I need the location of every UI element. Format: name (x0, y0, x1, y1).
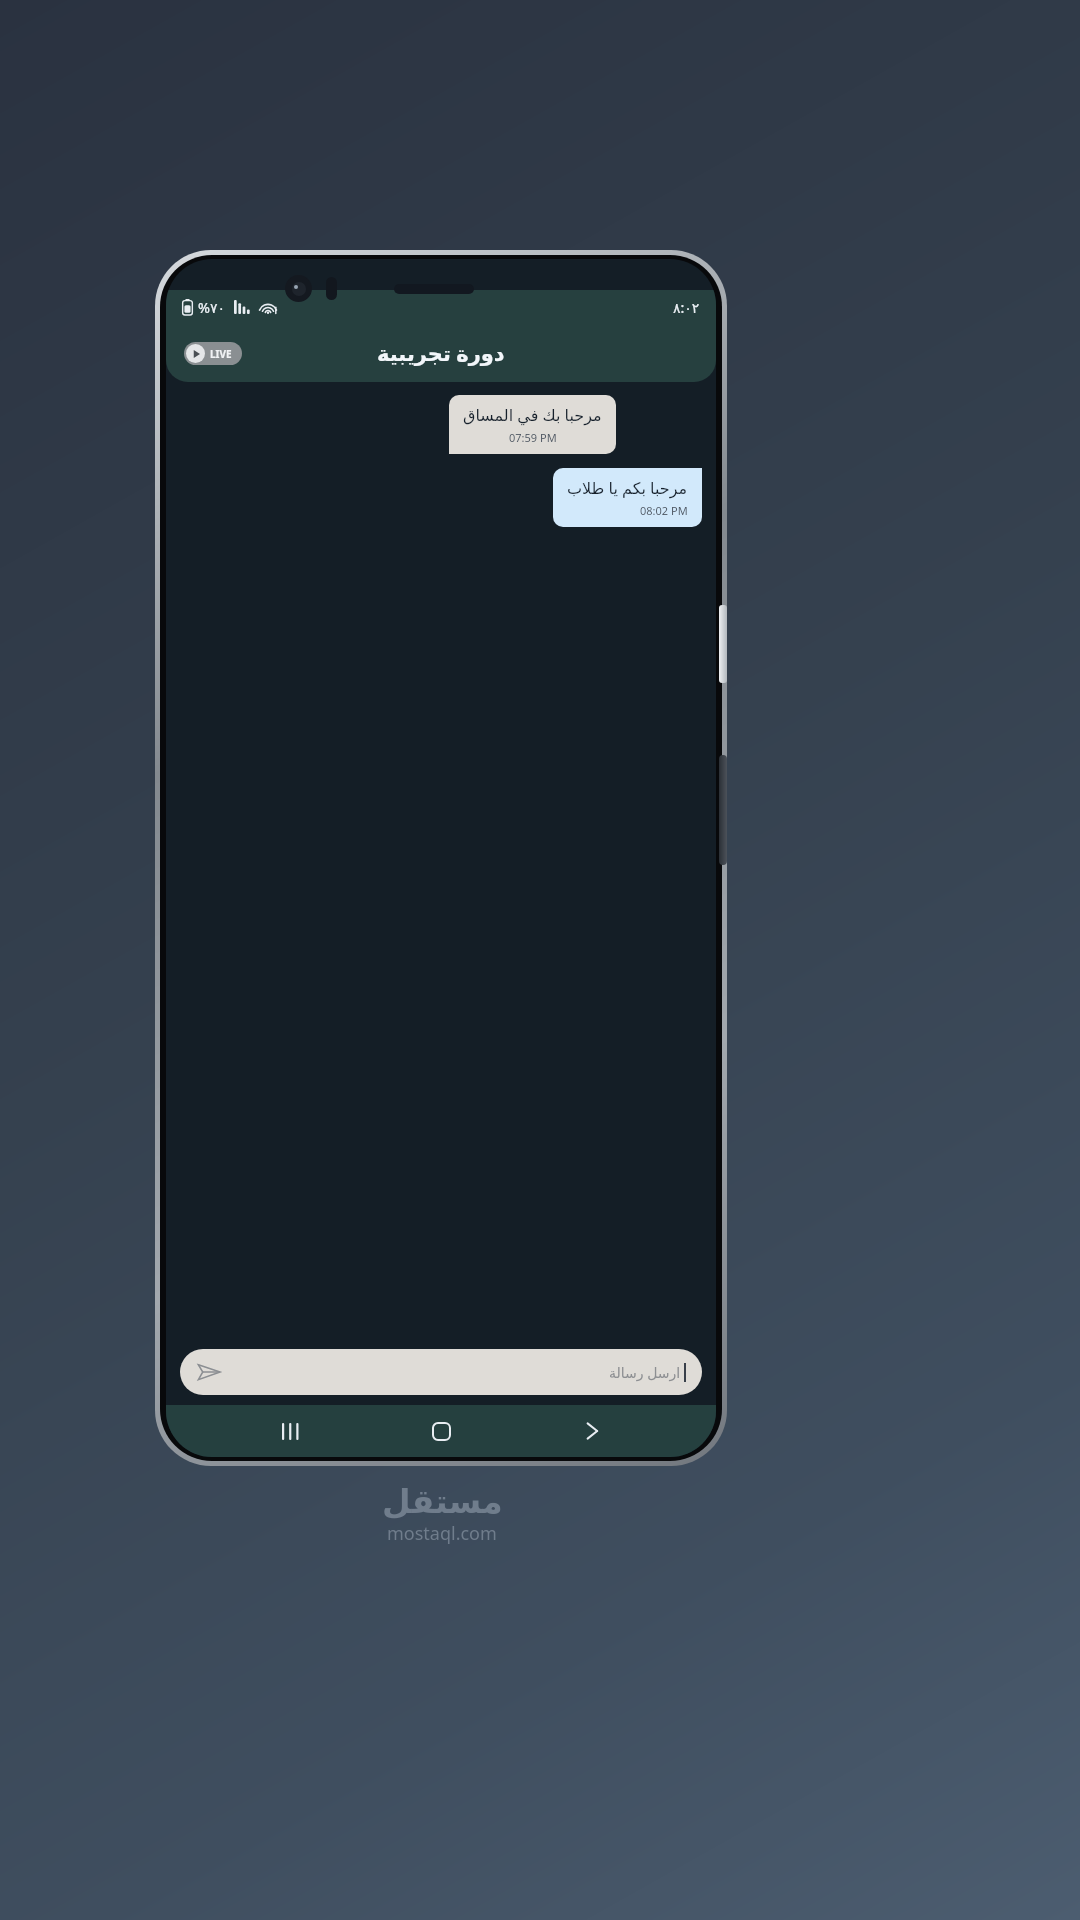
staticText: mostaql.com (387, 1521, 497, 1546)
staticText: مرحبا بك في المساق (463, 404, 602, 426)
button[interactable]: Back (565, 1405, 619, 1457)
button[interactable]: Send (196, 1359, 222, 1385)
staticText: ارسل رسالة (609, 1363, 681, 1382)
staticText: مستقل (382, 1482, 503, 1520)
staticText: دورة تجريبية (377, 339, 505, 368)
button[interactable]: مرحبا بك في المساق (449, 395, 616, 454)
button[interactable]: Home (414, 1405, 468, 1457)
staticText: ٨:٠٢ (673, 298, 700, 317)
staticText: 08:02 PM (640, 503, 688, 518)
button[interactable]: Send (180, 1349, 702, 1395)
staticText: 07:59 PM (509, 430, 557, 445)
staticText: مرحبا بكم يا طلاب (567, 477, 688, 499)
button[interactable]: Recents (263, 1405, 317, 1457)
button[interactable]: مرحبا بكم يا طلاب (553, 468, 702, 527)
staticText: LIVE (210, 347, 232, 361)
staticText: %٧٠ (198, 298, 225, 317)
button[interactable]: Live (184, 342, 242, 365)
